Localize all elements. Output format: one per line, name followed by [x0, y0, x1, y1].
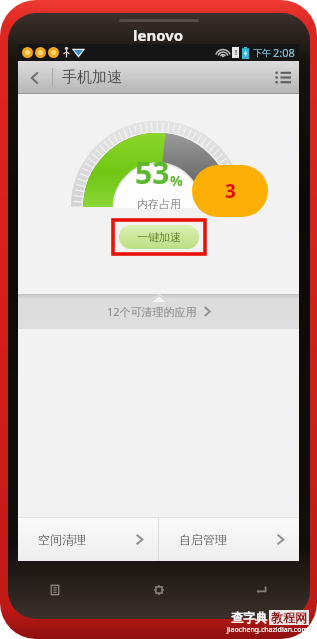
staticText: 3: [225, 178, 236, 204]
staticText: 12个可清理的应用: [107, 304, 197, 319]
staticText: 自启管理: [179, 532, 227, 547]
button[interactable]: Back: [253, 581, 271, 599]
staticText: %: [170, 171, 183, 190]
button[interactable]: 自启管理: [159, 518, 299, 561]
staticText: 教程网: [271, 610, 307, 625]
button[interactable]: 空间清理: [18, 518, 158, 561]
button[interactable]: Menu: [267, 61, 299, 94]
button[interactable]: Recent apps: [46, 581, 64, 599]
staticText: !: [235, 48, 237, 58]
staticText: 下午: [253, 47, 271, 58]
staticText: lenovo: [133, 25, 184, 45]
staticText: 空间清理: [38, 532, 86, 547]
staticText: 53: [135, 152, 170, 193]
staticText: 查字典: [231, 610, 267, 625]
staticText: 内存占用: [137, 197, 181, 211]
staticText: 2:08: [273, 45, 295, 60]
button[interactable]: Home: [150, 581, 168, 599]
staticText: jiaocheng.chazidian.com: [227, 625, 309, 635]
button[interactable]: Back: [18, 61, 52, 94]
button[interactable]: 一键加速: [119, 225, 199, 249]
staticText: 手机加速: [62, 68, 122, 87]
staticText: 一键加速: [137, 230, 181, 244]
button[interactable]: 12个可清理的应用: [18, 294, 299, 329]
